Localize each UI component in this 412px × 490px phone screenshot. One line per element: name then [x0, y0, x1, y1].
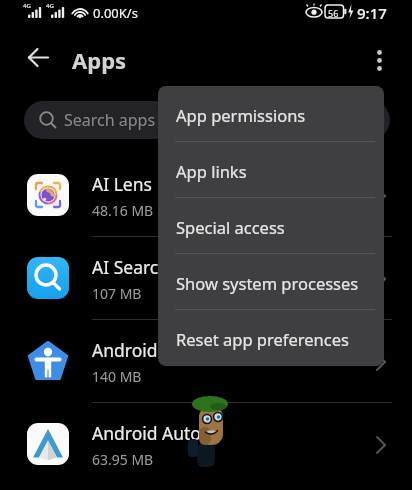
button[interactable]: Android Accessibility: [0, 320, 412, 403]
staticText: App links: [176, 160, 247, 182]
staticText: Search apps: [64, 109, 156, 131]
button[interactable]: Android Auto: [0, 403, 412, 486]
staticText: App permissions: [176, 104, 306, 126]
staticText: 107 MB: [92, 284, 142, 303]
button[interactable]: App permissions: [158, 86, 384, 142]
staticText: Android Auto: [92, 421, 201, 445]
staticText: 4G: [23, 2, 31, 10]
staticText: Reset app preferences: [176, 328, 349, 350]
staticText: Special access: [176, 216, 285, 238]
button[interactable]: [364, 42, 396, 78]
staticText: 56: [328, 7, 339, 19]
staticText: 0.00K/s: [93, 4, 138, 22]
staticText: 48.16 MB: [92, 201, 154, 220]
button[interactable]: Search apps: [24, 101, 390, 139]
staticText: 63.95 MB: [92, 450, 154, 469]
staticText: Apps: [72, 45, 127, 75]
staticText: AI Search: [92, 255, 170, 279]
staticText: AI Lens: [92, 172, 152, 196]
staticText: Android Accessibility: [92, 338, 261, 362]
button[interactable]: Special access: [158, 198, 384, 254]
button[interactable]: App links: [158, 142, 384, 198]
button[interactable]: Reset app preferences: [158, 310, 384, 366]
button[interactable]: AI Search: [0, 237, 412, 320]
button[interactable]: [16, 42, 64, 76]
button[interactable]: AI Lens: [0, 154, 412, 237]
staticText: 140 MB: [92, 367, 142, 386]
staticText: 9:17: [357, 3, 387, 23]
button[interactable]: Show system processes: [158, 254, 384, 310]
staticText: Show system processes: [176, 272, 359, 294]
staticText: 4G: [46, 2, 54, 10]
